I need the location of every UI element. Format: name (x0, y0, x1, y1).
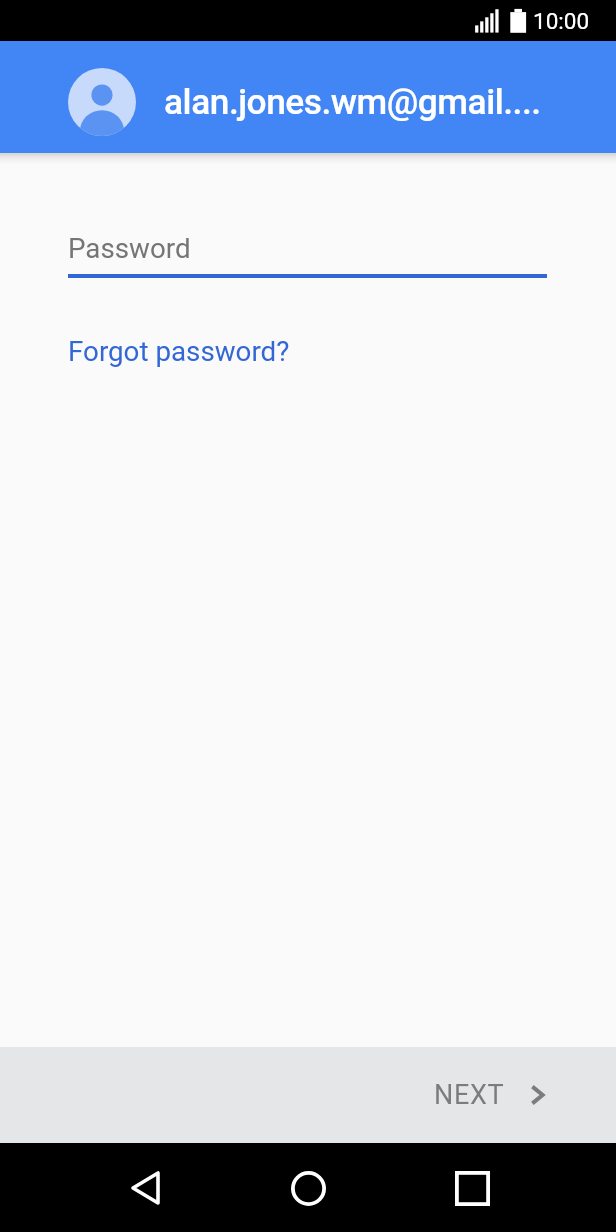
staticText: NEXT (434, 1079, 505, 1111)
button[interactable]: alan.jones.wm@gmail.... (0, 41, 616, 153)
button[interactable]: Recent apps (444, 1160, 500, 1216)
staticText: Password (68, 232, 191, 265)
staticText: alan.jones.wm@gmail.... (164, 81, 541, 122)
button[interactable]: Password (68, 232, 547, 278)
button[interactable]: Forgot password? (68, 335, 290, 368)
button[interactable]: Home (280, 1160, 336, 1216)
staticText: 10:00 (533, 8, 590, 34)
staticText: Forgot password? (68, 335, 290, 368)
button[interactable]: Back (117, 1158, 173, 1217)
button[interactable]: NEXT (434, 1079, 545, 1111)
